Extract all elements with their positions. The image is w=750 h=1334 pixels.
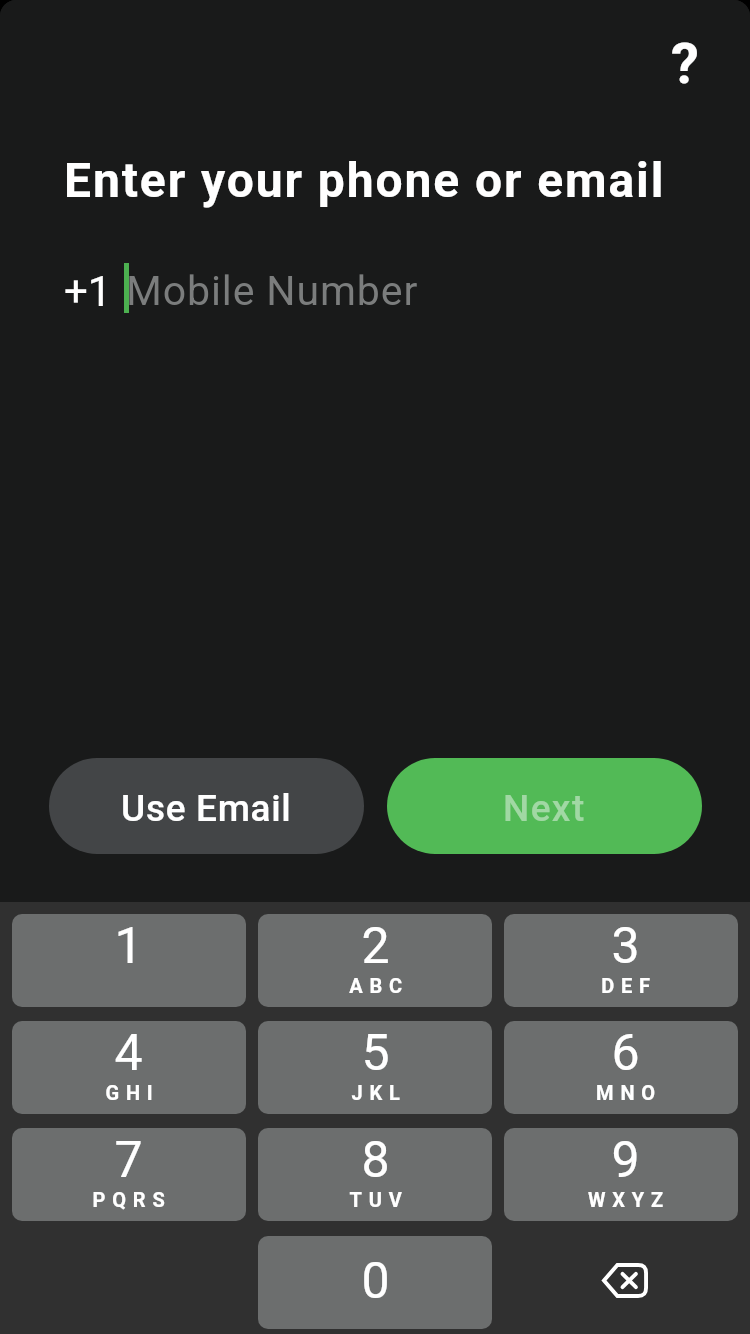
button[interactable]: Next: [387, 758, 702, 854]
staticText: Enter your phone or email: [64, 152, 666, 208]
staticText: JKL: [351, 1081, 407, 1104]
button[interactable]: 4: [12, 1021, 246, 1114]
staticText: 1: [114, 917, 143, 976]
staticText: 6: [611, 1024, 640, 1083]
button[interactable]: 7: [12, 1128, 246, 1221]
button[interactable]: 6: [504, 1021, 738, 1114]
staticText: WXYZ: [588, 1188, 670, 1211]
staticText: Mobile Number: [126, 267, 419, 315]
staticText: 5: [361, 1024, 390, 1083]
staticText: PQRS: [92, 1188, 172, 1211]
staticText: MNO: [596, 1081, 662, 1104]
staticText: 2: [361, 917, 390, 976]
button[interactable]: 0: [258, 1236, 492, 1329]
staticText: GHI: [105, 1081, 160, 1104]
button[interactable]: 2: [258, 914, 492, 1007]
staticText: TUV: [349, 1188, 409, 1211]
button[interactable]: 5: [258, 1021, 492, 1114]
button[interactable]: Use Email: [49, 758, 364, 854]
staticText: ?: [671, 31, 699, 97]
staticText: 3: [611, 917, 640, 976]
staticText: +1: [64, 267, 112, 316]
staticText: 4: [114, 1024, 143, 1083]
staticText: Use Email: [121, 787, 292, 830]
staticText: Next: [503, 787, 586, 830]
button[interactable]: 8: [258, 1128, 492, 1221]
staticText: ABC: [349, 974, 409, 997]
staticText: DEF: [601, 974, 657, 997]
staticText: 8: [361, 1131, 390, 1190]
button[interactable]: 1: [12, 914, 246, 1007]
button[interactable]: Help: [645, 24, 725, 104]
staticText: 7: [114, 1131, 143, 1190]
button[interactable]: 3: [504, 914, 738, 1007]
button[interactable]: Backspace: [504, 1236, 738, 1329]
staticText: 0: [361, 1252, 390, 1311]
button[interactable]: 9: [504, 1128, 738, 1221]
staticText: 9: [611, 1131, 640, 1190]
button[interactable]: +1: [64, 260, 686, 316]
